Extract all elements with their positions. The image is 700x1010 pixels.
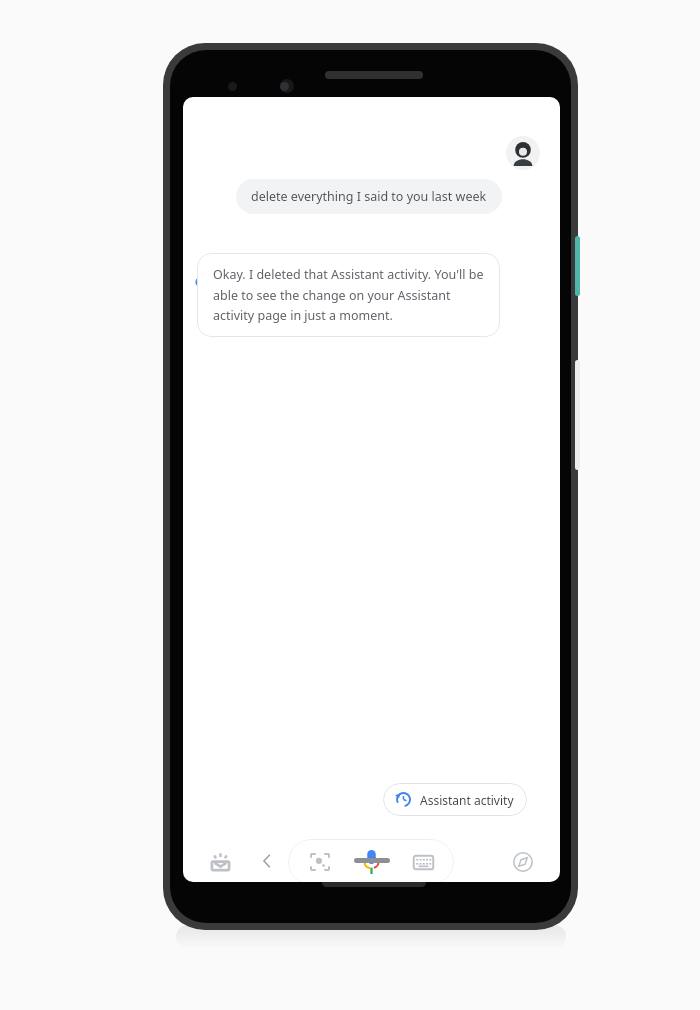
button[interactable]: Voice search (351, 842, 391, 882)
button[interactable]: Back (247, 841, 287, 881)
button[interactable]: Snapshot (197, 839, 243, 882)
staticText: Okay. I deleted that Assistant activity.… (213, 266, 486, 323)
button[interactable]: Keyboard (404, 843, 442, 881)
button[interactable]: Google Lens (301, 843, 339, 881)
staticText: delete everything I said to you last wee… (251, 188, 487, 205)
button[interactable]: Okay. I deleted that Assistant activity.… (197, 253, 500, 337)
button[interactable]: Explore (500, 839, 546, 882)
button[interactable]: delete everything I said to you last wee… (236, 179, 502, 214)
button[interactable]: Assistant activity (383, 783, 527, 816)
staticText: Assistant activity (420, 792, 514, 808)
button[interactable]: Account (506, 136, 540, 170)
button[interactable]: Home (354, 858, 390, 863)
